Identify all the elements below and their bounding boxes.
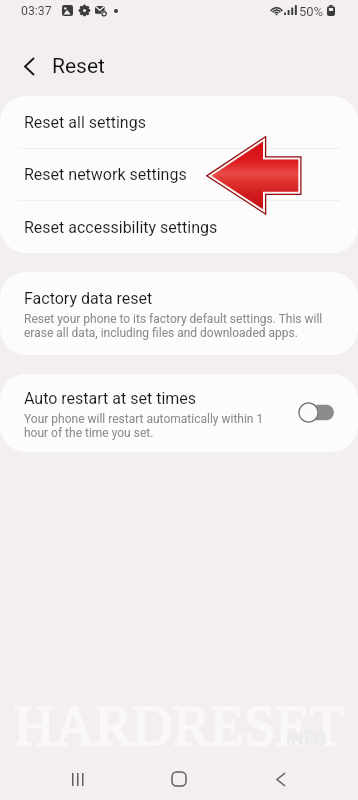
staticText: 50% (299, 4, 324, 19)
button[interactable]: Recent apps (54, 758, 102, 800)
button[interactable]: Auto restart at set times (0, 374, 358, 452)
staticText: Factory data reset (24, 289, 153, 308)
button[interactable]: Reset accessibility settings (0, 201, 358, 253)
staticText: Auto restart at set times (24, 389, 197, 408)
button[interactable]: Reset network settings (0, 149, 358, 200)
button[interactable]: Auto restart at set times toggle (298, 402, 334, 423)
staticText: Reset network settings (24, 165, 187, 184)
staticText: INFO (286, 728, 327, 749)
staticText: Reset (52, 54, 105, 79)
staticText: HARDRESET (14, 695, 344, 757)
button[interactable]: Reset all settings (0, 96, 358, 148)
staticText: Reset accessibility settings (24, 218, 218, 237)
staticText: Reset your phone to its factory default … (24, 312, 336, 340)
button[interactable]: Home (155, 758, 203, 800)
button[interactable]: Back (257, 758, 305, 800)
staticText: Reset all settings (24, 113, 146, 132)
staticText: 03:37 (21, 4, 52, 18)
staticText: Your phone will restart automatically wi… (24, 412, 280, 440)
button[interactable]: Back (14, 51, 44, 81)
button[interactable]: Factory data reset (0, 272, 358, 355)
